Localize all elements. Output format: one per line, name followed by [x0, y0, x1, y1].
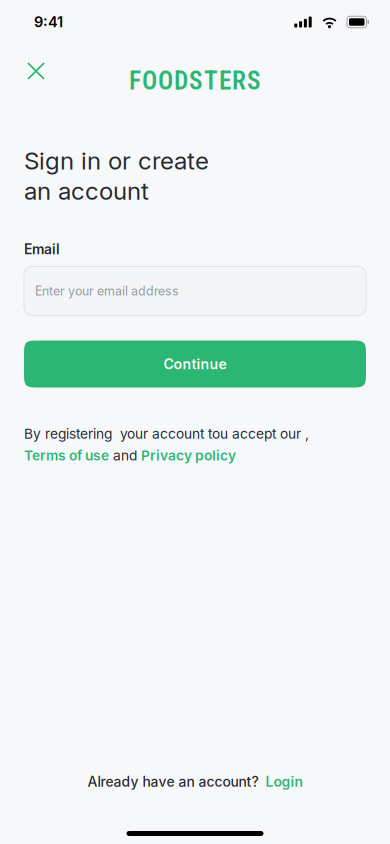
staticText: Already have an account? [87, 773, 258, 790]
staticText: 9:41 [34, 13, 63, 31]
staticText: FOODSTERS [129, 66, 261, 96]
button[interactable]: Terms of use [24, 447, 109, 464]
staticText: By registering your account tou accept o… [24, 425, 309, 442]
button[interactable]: Privacy policy [141, 447, 236, 464]
staticText: Privacy policy [141, 447, 236, 464]
staticText: Sign in or create [24, 146, 209, 175]
button[interactable]: Close [17, 52, 55, 90]
staticText: Continue [163, 355, 226, 373]
staticText: Login [265, 773, 302, 790]
staticText: Email [24, 241, 60, 257]
staticText: and [109, 447, 141, 464]
staticText: Enter your email address [35, 283, 179, 298]
button[interactable]: Login [265, 773, 302, 790]
staticText: an account [24, 176, 149, 206]
staticText: Terms of use [24, 447, 109, 464]
button[interactable]: Continue [24, 340, 366, 387]
